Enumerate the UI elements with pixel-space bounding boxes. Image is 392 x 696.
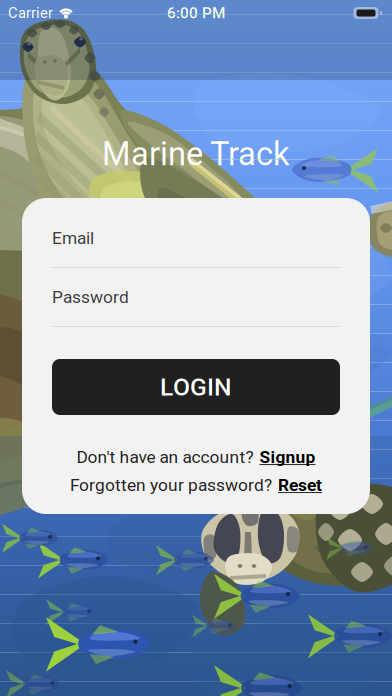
staticText: Reset (278, 475, 322, 495)
button[interactable]: LOGIN (52, 359, 340, 415)
button[interactable]: Forgotten your password? (26, 473, 366, 497)
staticText: 6:00 PM (167, 4, 225, 22)
staticText: Signup (259, 447, 315, 467)
staticText: Don't have an account? (76, 447, 253, 467)
staticText: LOGIN (160, 372, 232, 401)
staticText: Carrier (8, 4, 53, 22)
staticText: Email (52, 228, 94, 248)
staticText: Forgotten your password? (70, 475, 272, 495)
staticText: Password (52, 287, 129, 307)
button[interactable]: Email (52, 215, 340, 268)
staticText: Marine Track (102, 135, 290, 173)
button[interactable]: Password (52, 274, 340, 327)
button[interactable]: Don't have an account? (26, 445, 366, 469)
